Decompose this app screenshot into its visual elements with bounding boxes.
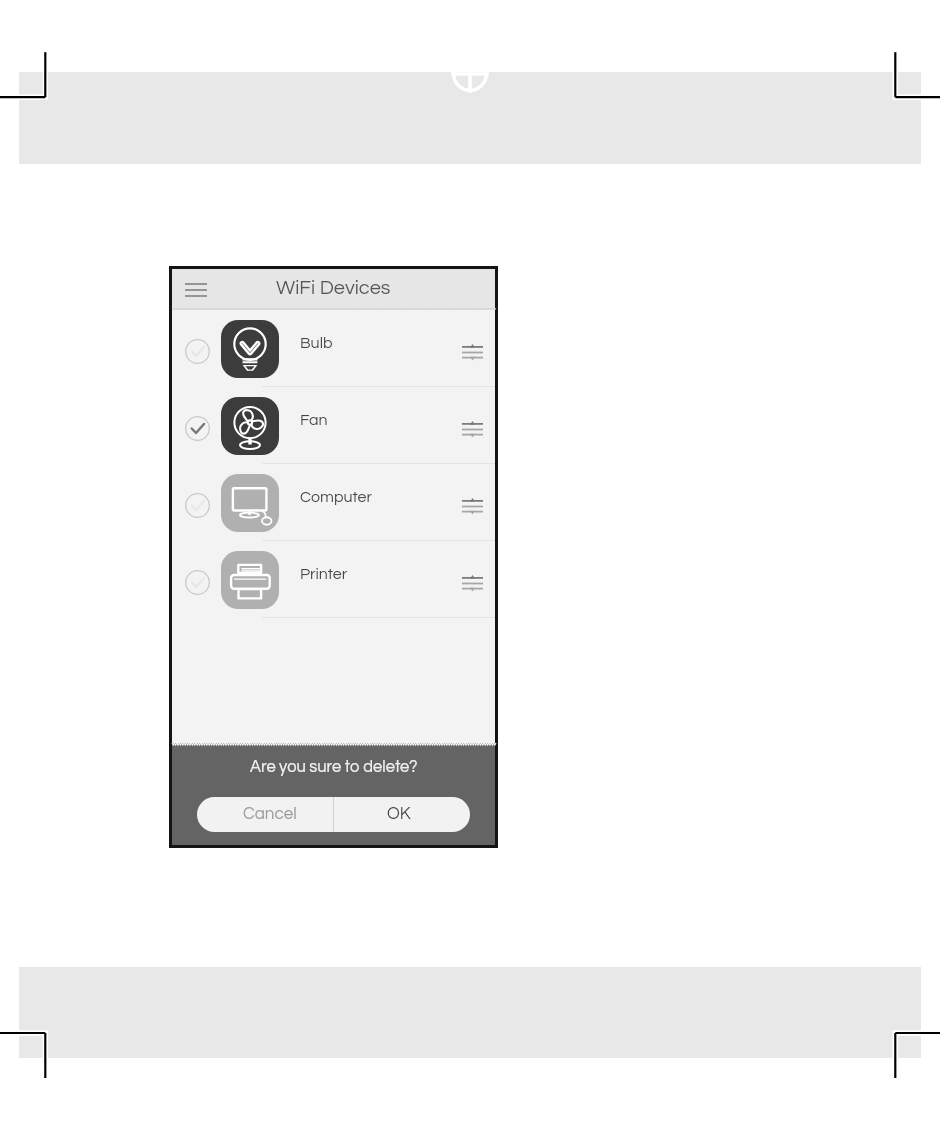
staticText: OK bbox=[387, 805, 411, 823]
button[interactable]: Adjust Bulb bbox=[457, 337, 487, 367]
button[interactable]: Select Printer bbox=[172, 541, 495, 618]
staticText: Fan bbox=[300, 412, 328, 428]
staticText: Bulb bbox=[300, 335, 333, 351]
button[interactable]: OK bbox=[334, 797, 470, 832]
staticText: Computer bbox=[300, 489, 373, 505]
button[interactable]: Cancel bbox=[197, 797, 333, 832]
staticText: WiFi Devices bbox=[276, 278, 391, 299]
staticText: Printer bbox=[300, 566, 348, 582]
button[interactable]: Adjust Printer bbox=[457, 568, 487, 598]
staticText: Are you sure to delete? bbox=[250, 758, 418, 775]
button[interactable]: Select Bulb bbox=[172, 310, 495, 387]
button[interactable]: Select Computer bbox=[185, 493, 210, 518]
button[interactable]: Adjust Computer bbox=[457, 491, 487, 521]
staticText: Cancel bbox=[243, 805, 297, 823]
button[interactable]: Select Fan bbox=[172, 387, 495, 464]
button[interactable]: Select Computer bbox=[172, 464, 495, 541]
button[interactable]: Adjust Fan bbox=[457, 414, 487, 444]
button[interactable]: Open navigation menu bbox=[179, 273, 213, 307]
button[interactable]: Select Bulb bbox=[185, 339, 210, 364]
button[interactable]: Select Printer bbox=[185, 570, 210, 595]
button[interactable]: Select Fan bbox=[185, 416, 210, 441]
